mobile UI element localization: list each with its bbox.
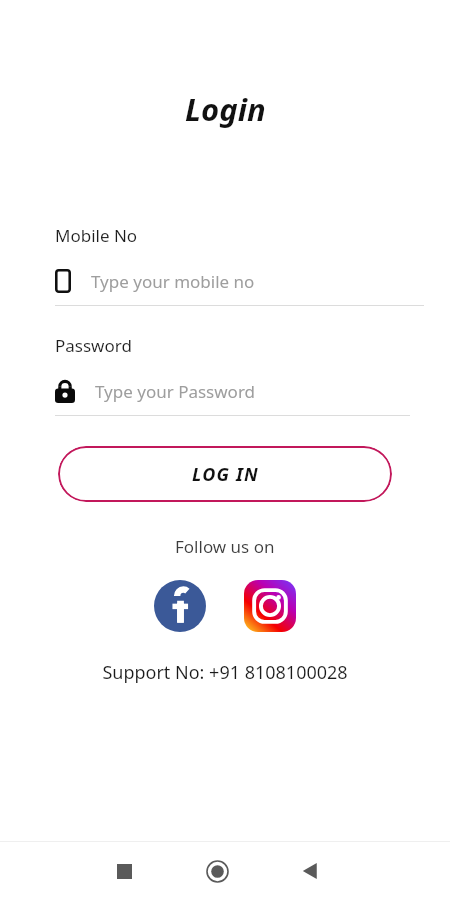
button[interactable]: Facebook xyxy=(153,579,207,633)
button[interactable]: Type your mobile no xyxy=(55,269,424,293)
button[interactable]: Back xyxy=(286,847,334,895)
staticText: Type your Password xyxy=(95,380,256,403)
button[interactable]: Type your Password xyxy=(55,379,410,403)
button[interactable]: Home xyxy=(193,847,241,895)
button[interactable]: Instagram xyxy=(243,579,297,633)
staticText: Type your mobile no xyxy=(91,270,255,293)
staticText: Support No: +91 8108100028 xyxy=(102,660,348,685)
staticText: Login xyxy=(185,88,266,130)
staticText: Password xyxy=(55,334,132,357)
button[interactable]: LOG IN xyxy=(58,446,392,502)
staticText: Follow us on xyxy=(175,535,275,558)
button[interactable]: Recent apps xyxy=(100,847,148,895)
staticText: LOG IN xyxy=(192,462,259,487)
staticText: Mobile No xyxy=(55,224,138,247)
